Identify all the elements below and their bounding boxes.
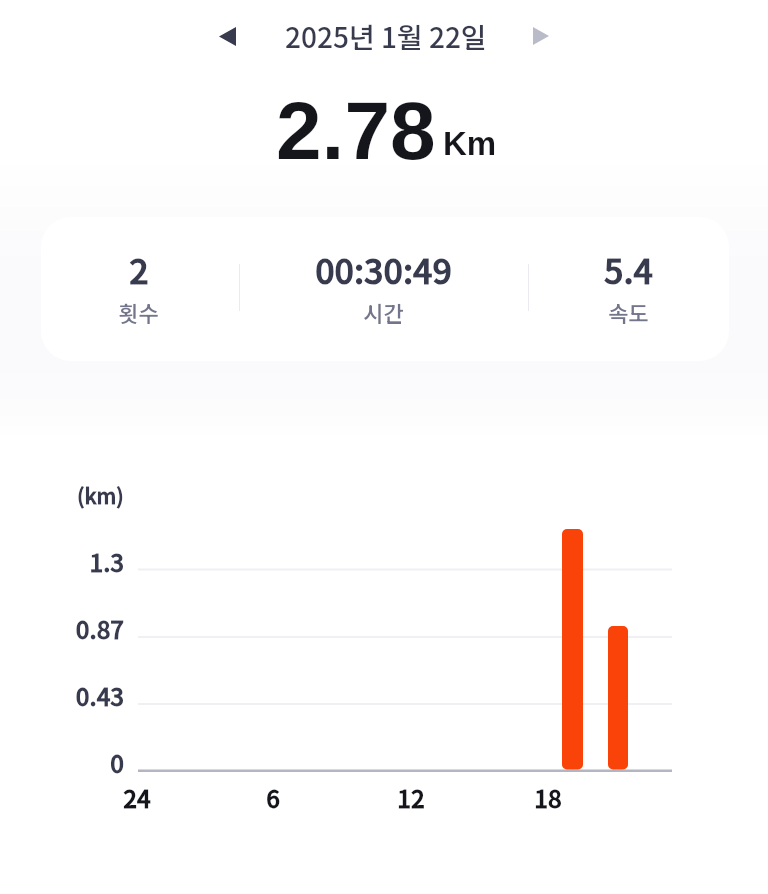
staticText: 5.4 — [604, 245, 653, 294]
button[interactable]: Next day — [519, 14, 563, 58]
staticText: 00:30:49 — [315, 245, 452, 294]
button[interactable]: 2 — [39, 214, 238, 358]
staticText: 0 — [24, 745, 124, 780]
staticText: 속도 — [608, 296, 649, 328]
button[interactable]: 5.4 — [529, 214, 728, 358]
staticText: 2.78 — [276, 85, 436, 177]
staticText: 12 — [371, 780, 451, 815]
staticText: 18 — [508, 780, 588, 815]
button[interactable]: Previous day — [205, 14, 249, 58]
staticText: 시간 — [363, 296, 404, 328]
staticText: 6 — [233, 780, 313, 815]
staticText: 0.87 — [24, 611, 124, 646]
staticText: Km — [443, 125, 497, 162]
staticText: 횟수 — [118, 296, 159, 328]
staticText: 2 — [129, 245, 149, 294]
staticText: 1.3 — [24, 544, 124, 579]
staticText: 2025년 1월 22일 — [285, 16, 487, 57]
staticText: 24 — [97, 780, 177, 815]
staticText: (km) — [77, 480, 124, 510]
staticText: 0.43 — [24, 678, 124, 713]
button[interactable]: 00:30:49 — [239, 214, 528, 358]
button[interactable]: 2025년 1월 22일 — [270, 8, 502, 64]
